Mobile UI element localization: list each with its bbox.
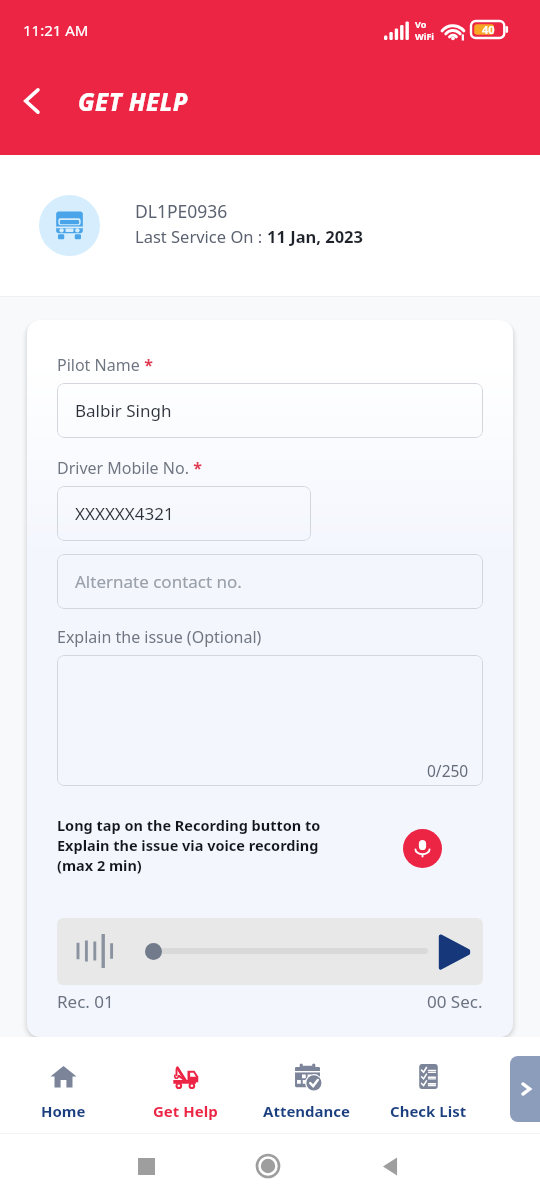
- staticText: 0/250: [427, 760, 469, 781]
- button[interactable]: XXXXXX4321: [57, 486, 311, 541]
- staticText: 40: [482, 22, 495, 37]
- staticText: Rec. 01: [57, 990, 114, 1013]
- button[interactable]: Attendance: [255, 1062, 359, 1124]
- button[interactable]: More tabs: [510, 1056, 540, 1122]
- staticText: *: [189, 457, 202, 479]
- button[interactable]: Recents: [126, 1146, 166, 1186]
- staticText: Alternate contact no.: [75, 570, 242, 593]
- button[interactable]: Home: [248, 1146, 288, 1186]
- button[interactable]: Play: [432, 930, 476, 974]
- staticText: DL1PE0936: [135, 199, 228, 223]
- button[interactable]: Back: [9, 79, 53, 123]
- staticText: 11 Jan, 2023: [267, 225, 363, 247]
- staticText: Attendance: [263, 1101, 351, 1121]
- staticText: 00 Sec.: [427, 990, 483, 1013]
- button[interactable]: Back: [370, 1146, 410, 1186]
- staticText: Pilot Name: [57, 354, 140, 376]
- staticText: Last Service On :: [135, 225, 267, 247]
- staticText: Explain the issue (Optional): [57, 626, 262, 648]
- staticText: XXXXXX4321: [75, 502, 174, 525]
- staticText: 11:21 AM: [23, 20, 89, 40]
- button[interactable]: Alternate contact no.: [57, 554, 483, 609]
- staticText: GET HELP: [78, 85, 188, 118]
- button[interactable]: Record voice: [403, 829, 442, 868]
- button[interactable]: Balbir Singh: [57, 383, 483, 438]
- staticText: Long tap on the Recording button to Expl…: [57, 815, 321, 875]
- button[interactable]: Get Help: [133, 1062, 237, 1124]
- staticText: WiFi: [415, 30, 435, 42]
- staticText: Get Help: [153, 1101, 218, 1121]
- button[interactable]: Home: [11, 1062, 115, 1124]
- staticText: *: [140, 354, 153, 376]
- staticText: Balbir Singh: [75, 399, 172, 422]
- staticText: Check List: [390, 1101, 467, 1121]
- staticText: Vo: [415, 18, 427, 30]
- button[interactable]: Check List: [376, 1062, 480, 1124]
- staticText: Home: [41, 1101, 86, 1121]
- staticText: Driver Mobile No.: [57, 457, 189, 479]
